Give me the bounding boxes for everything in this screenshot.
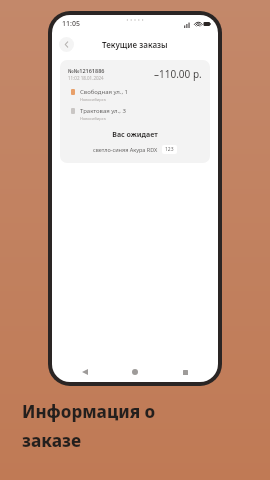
- staticText: Новосибирск: [80, 97, 106, 102]
- staticText: Текущие заказы: [102, 39, 168, 50]
- button[interactable]: Home: [128, 365, 142, 379]
- staticText: 11:02 18.01.2024: [68, 75, 104, 81]
- staticText: Свободная ул., 1: [80, 88, 129, 96]
- button[interactable]: Back: [59, 37, 74, 52]
- staticText: 123: [165, 146, 174, 153]
- staticText: светло-синяя Акура RDX: [93, 146, 158, 153]
- staticText: №№12161886: [68, 67, 105, 74]
- staticText: –110.00 р.: [154, 67, 202, 81]
- button[interactable]: Recents: [178, 365, 192, 379]
- staticText: Информация о: [22, 400, 156, 423]
- button[interactable]: №№12161886: [60, 60, 210, 163]
- staticText: Трактовая ул., 3: [80, 107, 126, 115]
- button[interactable]: Back: [78, 365, 92, 379]
- staticText: 11:05: [62, 19, 80, 29]
- staticText: Вас ожидает: [68, 130, 202, 140]
- staticText: Новосибирск: [80, 116, 106, 121]
- staticText: заказе: [22, 429, 82, 452]
